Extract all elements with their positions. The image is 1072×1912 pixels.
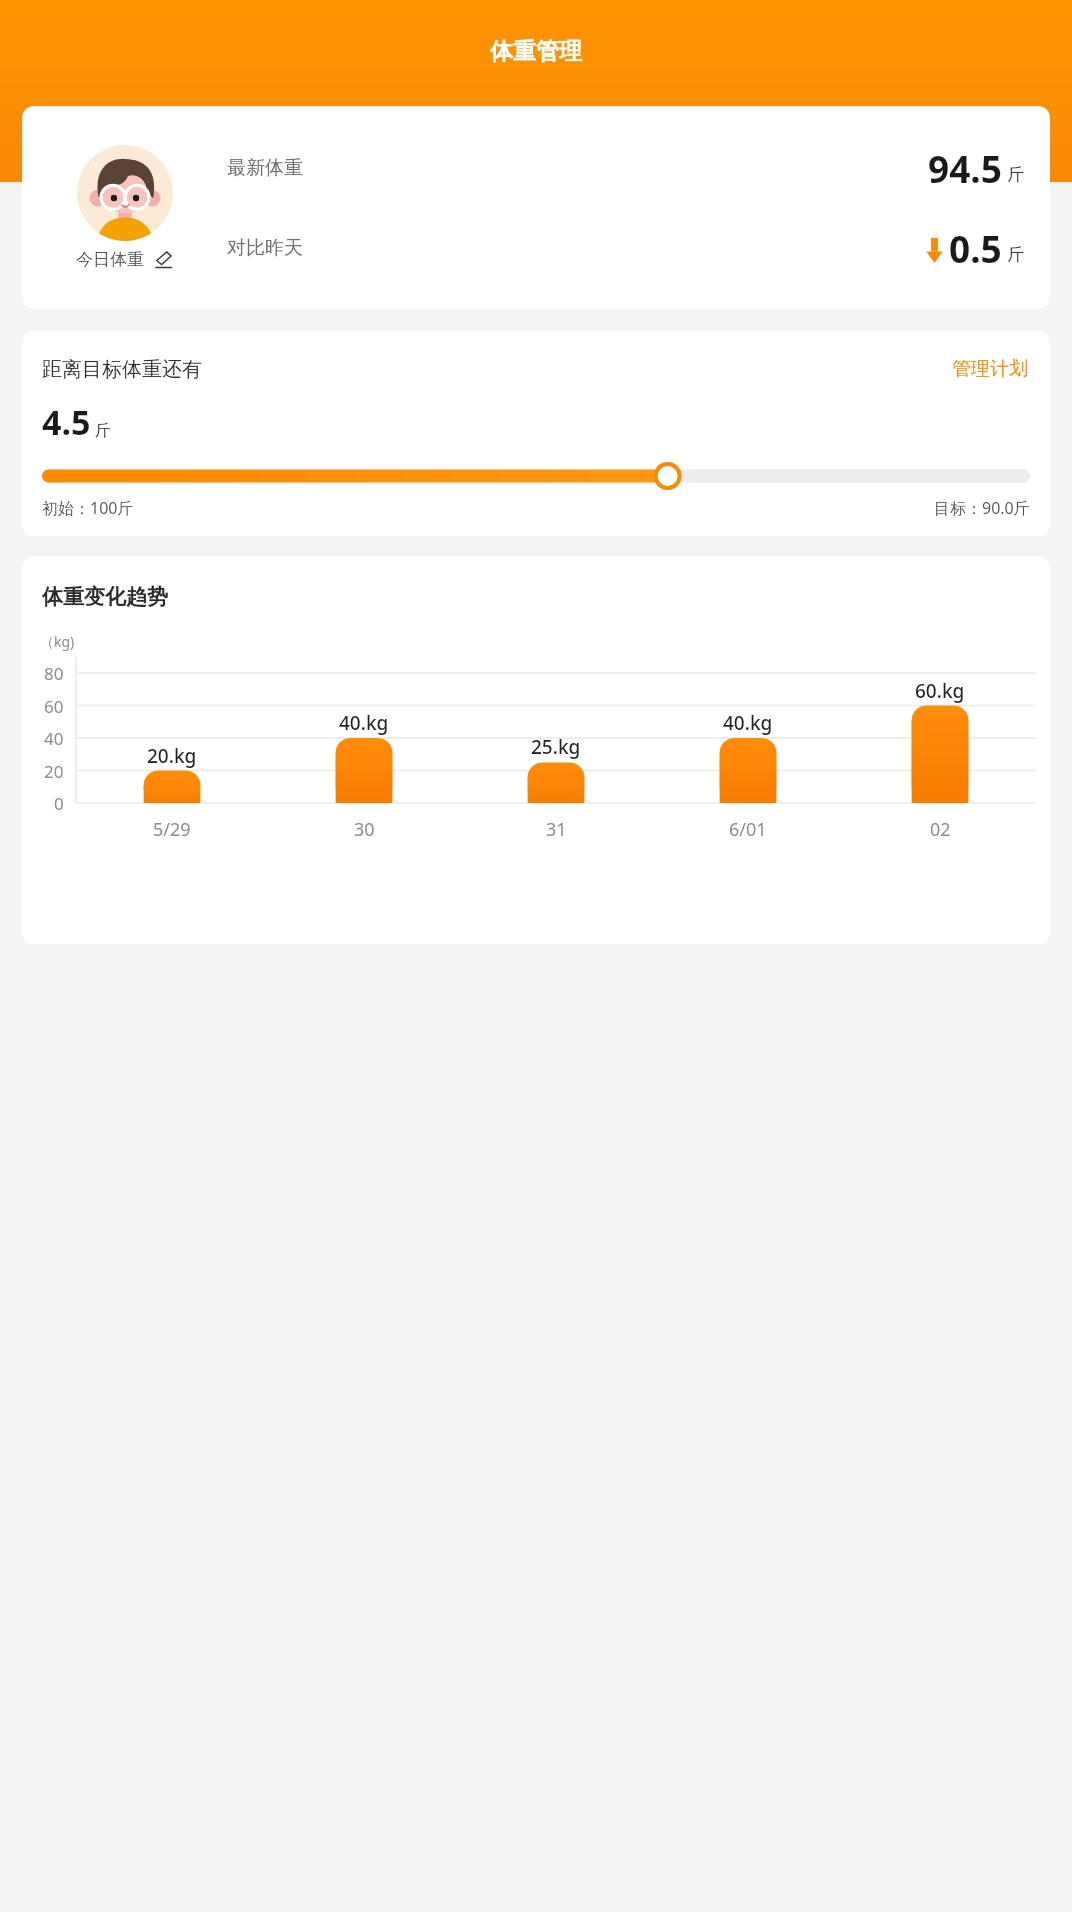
- staticText: 目标：90.0斤: [934, 497, 1030, 519]
- staticText: 斤: [95, 421, 111, 441]
- staticText: 80: [44, 662, 64, 685]
- staticText: 今日体重: [76, 249, 144, 270]
- button[interactable]: 今日体重: [22, 145, 227, 270]
- staticText: 25.kg: [531, 734, 581, 760]
- button[interactable]: [42, 463, 1030, 489]
- other: Edit today's weight: [154, 250, 173, 269]
- staticText: 5/29: [153, 817, 191, 842]
- staticText: 60: [44, 695, 64, 718]
- staticText: 02: [930, 817, 951, 842]
- staticText: 20.kg: [147, 743, 197, 769]
- staticText: 对比昨天: [227, 236, 303, 260]
- staticText: 体重变化趋势: [42, 584, 168, 610]
- staticText: 最新体重: [227, 156, 303, 180]
- staticText: 94.5: [928, 143, 1002, 193]
- staticText: 体重管理: [490, 37, 582, 66]
- button[interactable]: 管理计划: [950, 355, 1030, 383]
- staticText: （kg): [40, 632, 75, 651]
- staticText: 斤: [1007, 244, 1024, 265]
- staticText: 40.kg: [723, 710, 773, 736]
- staticText: 6/01: [729, 817, 767, 842]
- staticText: 4.5: [42, 399, 91, 445]
- staticText: 距离目标体重还有: [42, 357, 202, 382]
- staticText: 30: [354, 817, 375, 842]
- staticText: 31: [546, 817, 567, 842]
- staticText: 0: [54, 792, 64, 815]
- staticText: 40.kg: [339, 710, 389, 736]
- staticText: 20: [44, 760, 64, 783]
- staticText: 初始：100斤: [42, 497, 134, 519]
- staticText: 斤: [1007, 164, 1024, 185]
- staticText: 管理计划: [952, 357, 1028, 381]
- staticText: 0.5: [949, 223, 1002, 273]
- staticText: 40: [44, 727, 64, 750]
- staticText: 60.kg: [915, 678, 965, 704]
